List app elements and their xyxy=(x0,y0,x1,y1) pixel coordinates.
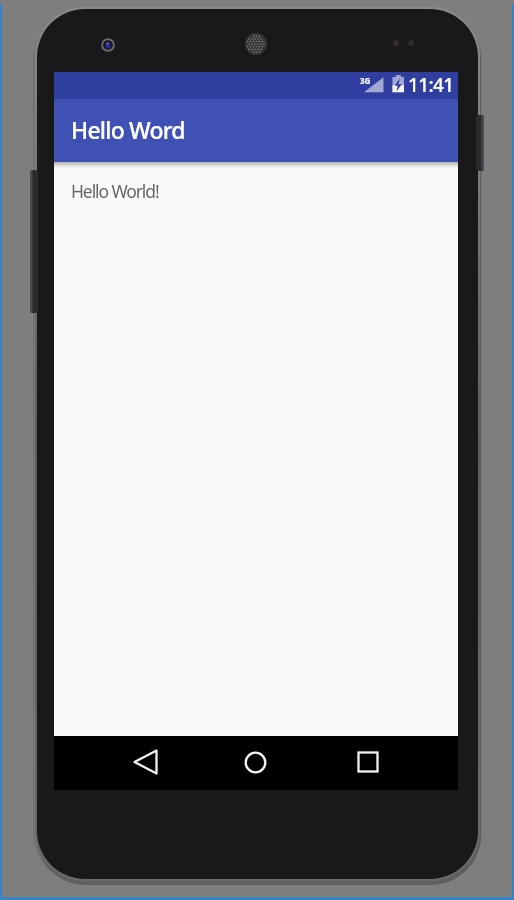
staticText: Hello Word xyxy=(71,114,185,145)
staticText: Hello World! xyxy=(71,179,159,203)
staticText: 3G xyxy=(360,75,371,86)
staticText: 11:41 xyxy=(408,72,454,97)
